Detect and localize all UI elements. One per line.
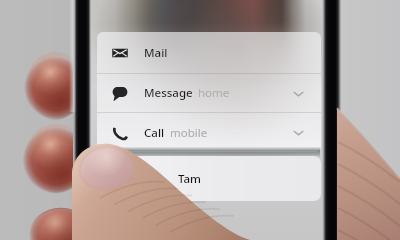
- staticText: mobile: [170, 125, 208, 141]
- button[interactable]: Mail: [97, 32, 321, 73]
- staticText: Mail: [144, 45, 168, 61]
- staticText: Call: [144, 125, 165, 141]
- staticText: home: [198, 85, 230, 101]
- staticText: Message: [144, 85, 193, 101]
- other: Expand: [291, 125, 306, 140]
- button[interactable]: Tam: [97, 156, 321, 201]
- button[interactable]: Call: [97, 113, 321, 152]
- button[interactable]: Message: [97, 74, 321, 112]
- staticText: Tam: [178, 171, 202, 187]
- other: Expand: [291, 86, 306, 101]
